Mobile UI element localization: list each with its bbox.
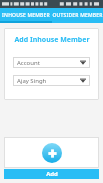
button[interactable]: Ajay Singh [13,75,90,86]
button[interactable]: Add member [42,143,62,163]
staticText: OUTSIDER MEMBER [52,12,103,19]
button[interactable]: Add [4,169,99,179]
staticText: Ajay Singh [17,77,80,85]
button[interactable]: Account [13,57,90,68]
staticText: Account [17,59,80,67]
staticText: Add [46,170,58,178]
button[interactable]: INHOUSE MEMBER [0,8,51,23]
staticText: INHOUSE MEMBER [2,12,50,19]
staticText: Add Inhouse Member [14,35,90,45]
button[interactable]: OUTSIDER MEMBER [51,8,103,23]
